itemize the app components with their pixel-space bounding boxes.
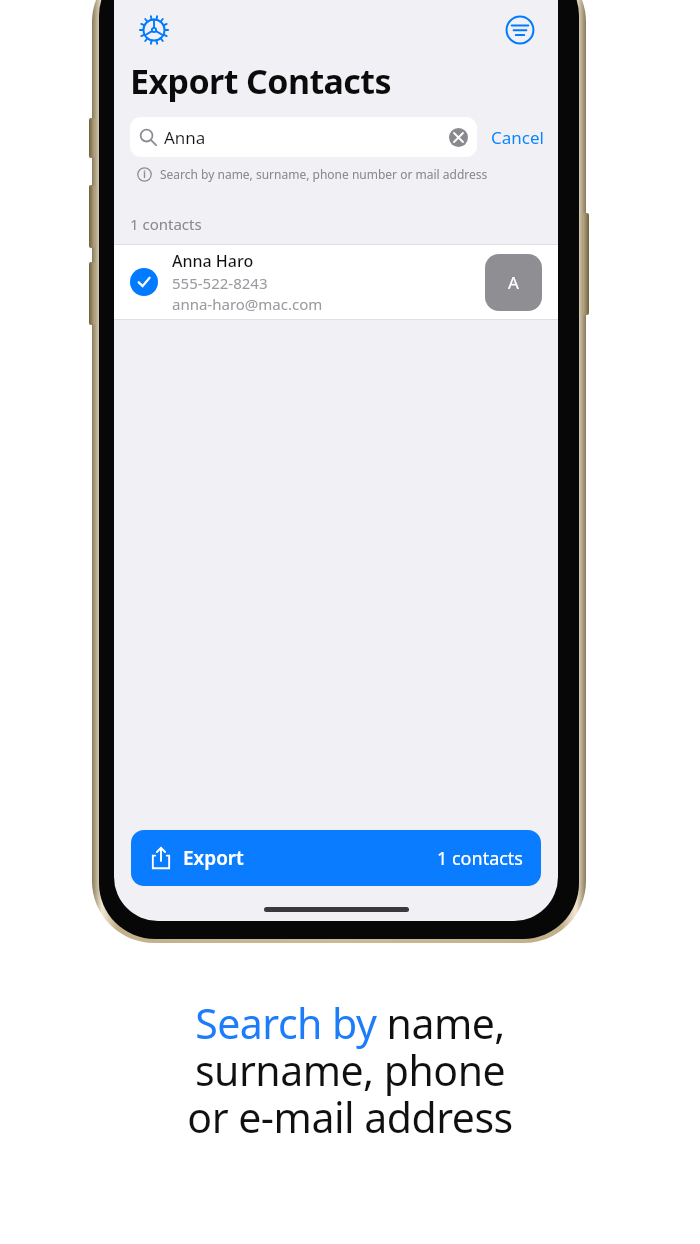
button[interactable]: Cancel [489, 122, 546, 153]
staticText: Cancel [491, 126, 544, 149]
staticText: 1 contacts [437, 846, 523, 871]
staticText: anna-haro@mac.com [172, 294, 323, 314]
staticText: Search by name, surname, phone or e-mail… [187, 995, 513, 1145]
button[interactable]: Clear search [449, 128, 468, 147]
staticText: Search by name, surname, phone number or… [160, 166, 488, 182]
staticText: A [508, 271, 519, 294]
button[interactable]: Anna [130, 117, 477, 157]
button[interactable]: Sort options [504, 14, 536, 46]
staticText: Anna [164, 126, 206, 149]
button[interactable]: Export [131, 830, 541, 886]
staticText: 555-522-8243 [172, 273, 268, 293]
staticText: Export [183, 845, 244, 871]
button[interactable]: Anna Haro [114, 245, 558, 319]
staticText: 1 contacts [130, 214, 202, 234]
staticText: Anna Haro [172, 250, 254, 272]
staticText: Export Contacts [130, 58, 391, 104]
button[interactable]: Settings [138, 14, 170, 46]
